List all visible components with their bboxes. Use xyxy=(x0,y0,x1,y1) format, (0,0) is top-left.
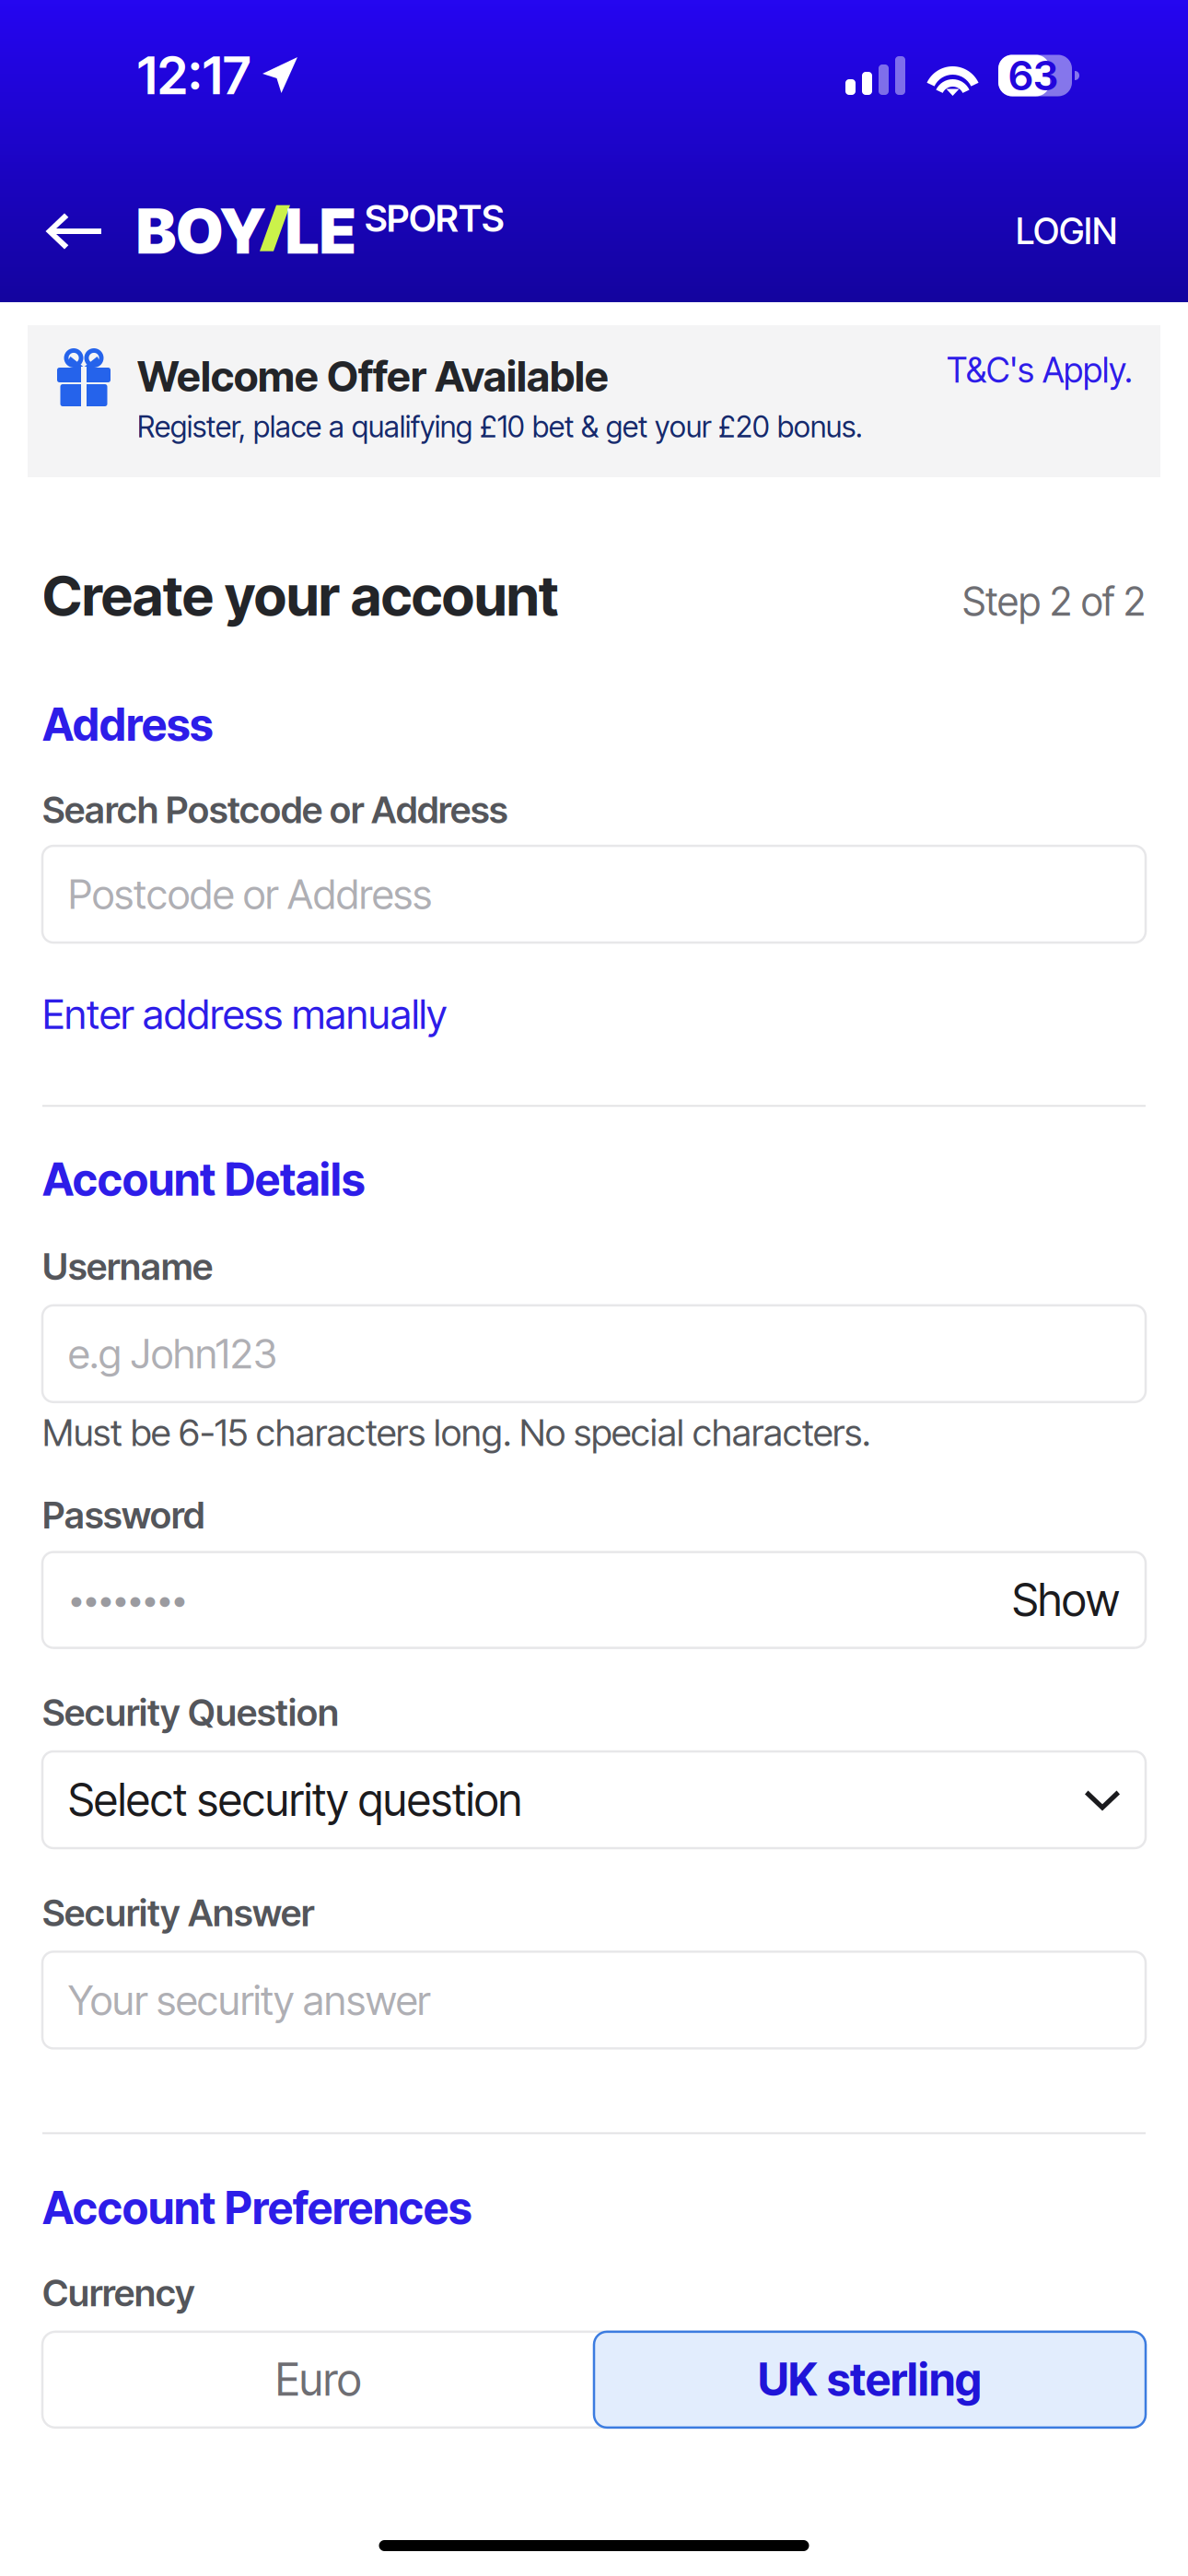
staticText: UK sterling xyxy=(758,2353,982,2406)
staticText: Search Postcode or Address xyxy=(42,787,507,832)
staticText: LE xyxy=(285,194,356,268)
staticText: Account Preferences xyxy=(42,2181,472,2235)
button[interactable]: Enter address manually xyxy=(42,990,447,1039)
staticText: Select security question xyxy=(68,1773,522,1827)
staticText: 63 xyxy=(1008,51,1058,100)
staticText: Security Question xyxy=(42,1690,339,1735)
button[interactable]: Select security question xyxy=(42,1751,1146,1848)
staticText: Step 2 of 2 xyxy=(962,577,1146,625)
staticText: •••••••• xyxy=(68,1581,186,1619)
button[interactable]: T&C's Apply. xyxy=(945,344,1135,396)
staticText: T&C's Apply. xyxy=(947,349,1133,391)
staticText: Must be 6-15 characters long. No special… xyxy=(42,1410,870,1455)
staticText: Password xyxy=(42,1493,204,1537)
staticText: Account Details xyxy=(42,1153,365,1206)
staticText: Show xyxy=(1012,1573,1120,1627)
staticText: Postcode or Address xyxy=(68,870,432,919)
staticText: Security Answer xyxy=(42,1891,314,1935)
staticText: Euro xyxy=(275,2353,361,2406)
staticText: Address xyxy=(42,698,213,752)
staticText: Register, place a qualifying £10 bet & g… xyxy=(137,409,863,445)
staticText: Username xyxy=(42,1244,213,1289)
staticText: Your security answer xyxy=(68,1976,430,2025)
button[interactable]: UK sterling xyxy=(594,2332,1146,2428)
staticText: e.g John123 xyxy=(68,1329,277,1378)
staticText: BOY xyxy=(136,194,265,268)
staticText: LOGIN xyxy=(1016,210,1117,253)
button[interactable]: LOGIN xyxy=(1008,193,1124,269)
staticText: Currency xyxy=(42,2271,195,2315)
staticText: Welcome Offer Available xyxy=(137,351,609,402)
button[interactable]: Euro xyxy=(42,2332,594,2428)
staticText: SPORTS xyxy=(365,196,504,241)
staticText: 12:17 xyxy=(137,44,250,107)
button[interactable]: Show xyxy=(1012,1573,1120,1627)
staticText: Enter address manually xyxy=(42,990,447,1039)
staticText: Create your account xyxy=(42,562,558,629)
button[interactable]: Back xyxy=(41,200,106,263)
